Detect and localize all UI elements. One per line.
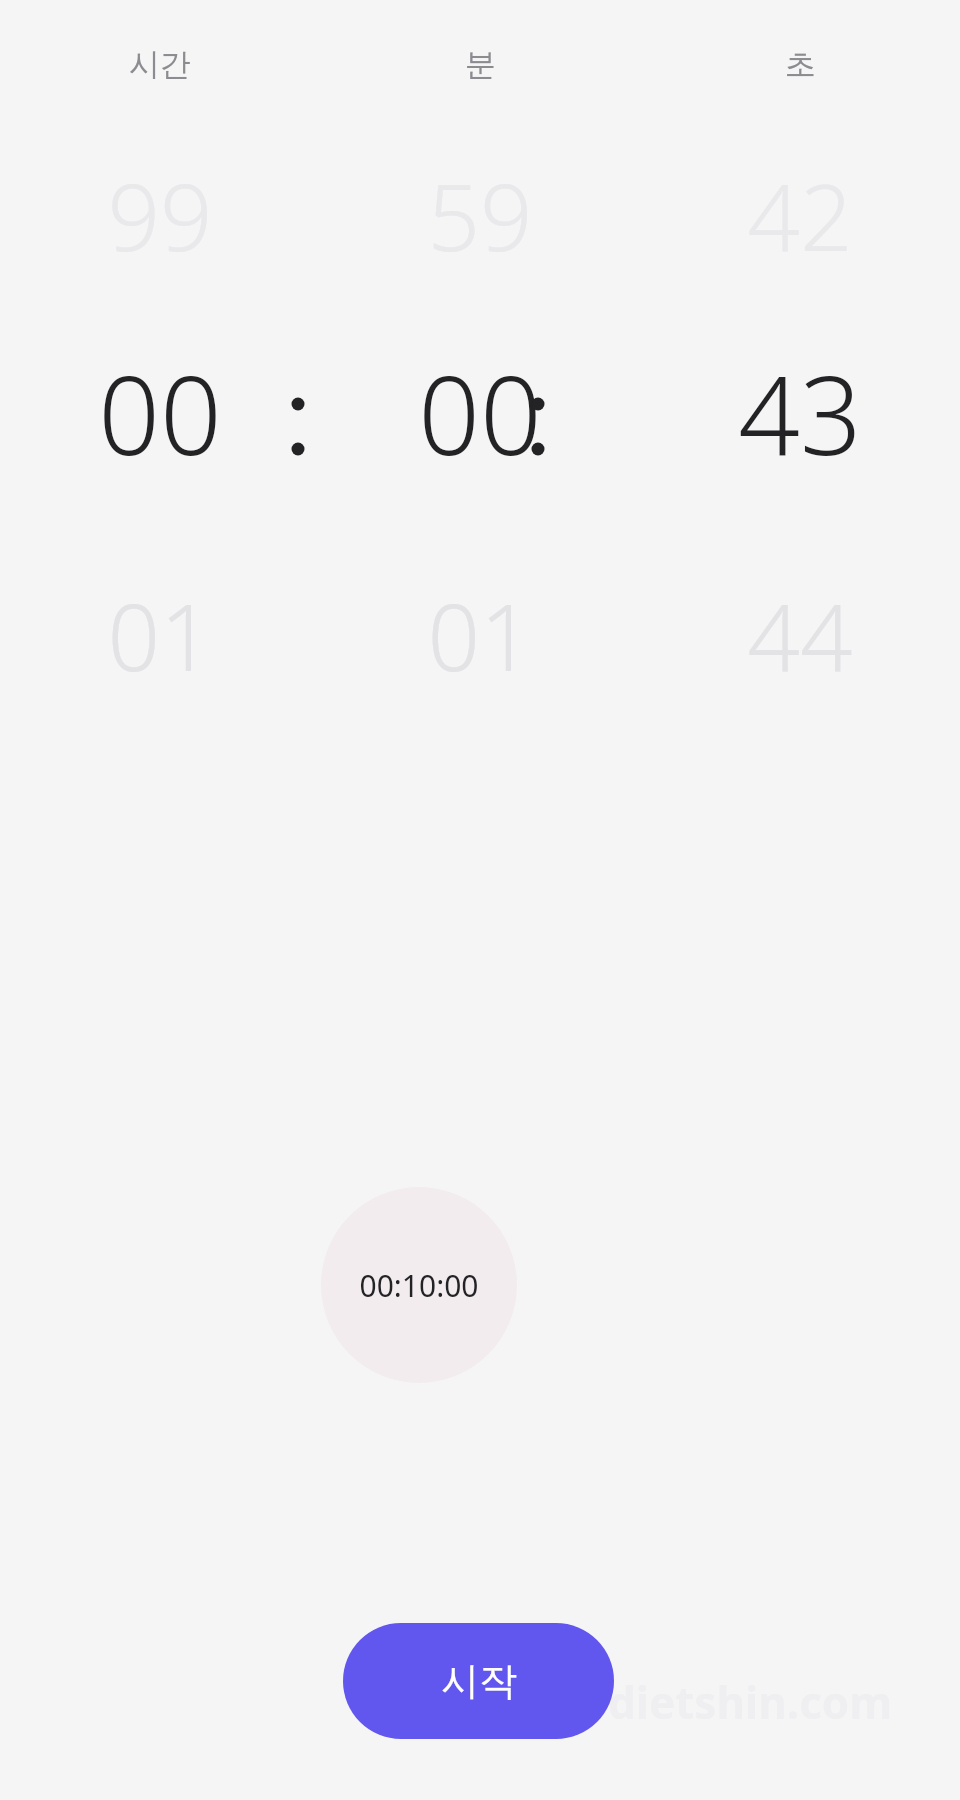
staticText: 시간 — [129, 45, 191, 84]
staticText: 분 — [465, 45, 496, 84]
button[interactable]: 44 — [640, 565, 960, 705]
staticText: 59 — [427, 153, 533, 278]
button[interactable]: 시간 — [0, 40, 320, 88]
staticText: 00:10:00 — [359, 1265, 479, 1306]
button[interactable]: 00 — [0, 338, 320, 488]
button[interactable]: 00 — [320, 338, 640, 488]
staticText: 시작 — [441, 1657, 517, 1705]
staticText: dietshin.com — [608, 1672, 893, 1732]
staticText: 43 — [738, 340, 862, 487]
other: separator — [286, 338, 310, 488]
button[interactable]: 시작 — [343, 1623, 614, 1739]
button[interactable]: 초 — [640, 40, 960, 88]
button[interactable]: 분 — [320, 40, 640, 88]
staticText: 01 — [107, 573, 213, 698]
staticText: 초 — [785, 45, 816, 84]
staticText: 99 — [107, 153, 213, 278]
staticText: 42 — [747, 153, 853, 278]
staticText: 01 — [427, 573, 533, 698]
staticText: 44 — [747, 573, 853, 698]
other: separator — [526, 338, 550, 488]
staticText: 00 — [98, 340, 222, 487]
button[interactable]: 00:10:00 — [321, 1187, 517, 1383]
staticText: 00 — [418, 340, 542, 487]
button[interactable]: 43 — [640, 338, 960, 488]
